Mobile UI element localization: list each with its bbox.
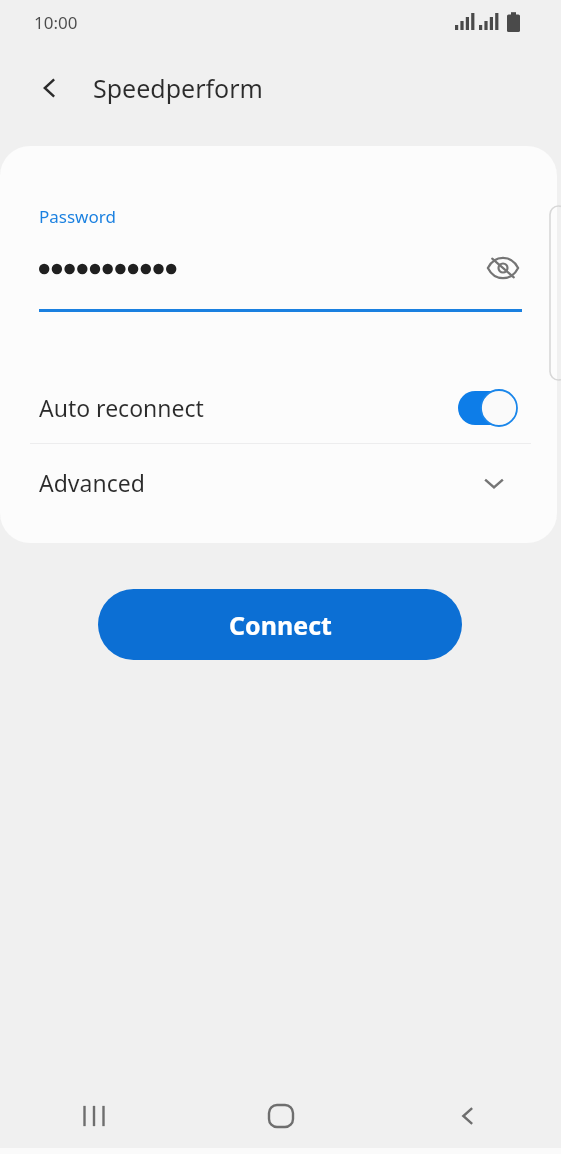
- button[interactable]: Auto reconnect: [0, 372, 557, 443]
- button[interactable]: Password: [39, 205, 522, 315]
- staticText: Password: [39, 205, 116, 228]
- staticText: Connect: [229, 608, 332, 642]
- button[interactable]: Connect: [98, 589, 462, 660]
- button[interactable]: Recents: [0, 1078, 187, 1154]
- button[interactable]: Home: [187, 1078, 374, 1154]
- button[interactable]: Auto reconnect toggle: [458, 389, 520, 427]
- button[interactable]: Show password: [480, 245, 526, 291]
- button[interactable]: Back: [374, 1078, 561, 1154]
- staticText: Auto reconnect: [39, 392, 204, 423]
- staticText: Advanced: [39, 467, 145, 498]
- staticText: 10:00: [34, 11, 78, 34]
- staticText: Speedperform: [93, 71, 263, 105]
- button[interactable]: Advanced: [0, 445, 557, 520]
- button[interactable]: Back: [26, 64, 74, 112]
